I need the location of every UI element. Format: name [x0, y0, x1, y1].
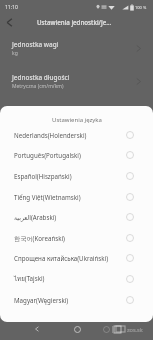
- staticText: Ustawienia jednostki/Je…: [37, 18, 112, 26]
- staticText: Nederlands(Holenderski): [14, 131, 123, 139]
- staticText: 100 %: [135, 5, 147, 10]
- button[interactable]: Nederlands(Holenderski): [0, 124, 153, 145]
- staticText: 한국어(Koreański): [14, 234, 123, 242]
- staticText: العربية(Arabski): [14, 213, 123, 221]
- button[interactable]: Português(Portugalski): [0, 144, 153, 165]
- staticText: Спрощена китайська(Ukraiński): [14, 254, 123, 262]
- button[interactable]: Home: [68, 320, 86, 338]
- button[interactable]: Спрощена китайська(Ukraiński): [0, 247, 153, 268]
- staticText: Jednostka wagi: [12, 40, 59, 49]
- staticText: Português(Portugalski): [14, 151, 123, 159]
- button[interactable]: Tiếng Việt(Wietnamski): [0, 186, 153, 207]
- button[interactable]: Back: [28, 320, 46, 338]
- button[interactable]: العربية(Arabski): [0, 206, 153, 227]
- staticText: Jednostka długości: [12, 73, 70, 82]
- button[interactable]: ไทย(Tajski): [0, 268, 153, 289]
- staticText: Español(Hiszpański): [14, 172, 123, 180]
- staticText: Ustawienia języka: [52, 116, 102, 124]
- staticText: Tiếng Việt(Wietnamski): [14, 193, 123, 201]
- button[interactable]: Magyar(Węgierski): [0, 289, 153, 310]
- staticText: zos.sk: [127, 326, 143, 333]
- staticText: Magyar(Węgierski): [14, 296, 123, 304]
- button[interactable]: Recents: [108, 320, 126, 338]
- staticText: ไทย(Tajski): [14, 274, 123, 284]
- button[interactable]: Back: [1, 14, 17, 30]
- button[interactable]: Jednostka wagi: [0, 37, 153, 59]
- button[interactable]: 한국어(Koreański): [0, 227, 153, 248]
- staticText: 11:10: [5, 4, 18, 11]
- staticText: Metryczna (cm/m/km): [12, 83, 64, 90]
- button[interactable]: Jednostka długości: [0, 70, 153, 92]
- staticText: kg: [12, 50, 18, 57]
- button[interactable]: Español(Hiszpański): [0, 165, 153, 186]
